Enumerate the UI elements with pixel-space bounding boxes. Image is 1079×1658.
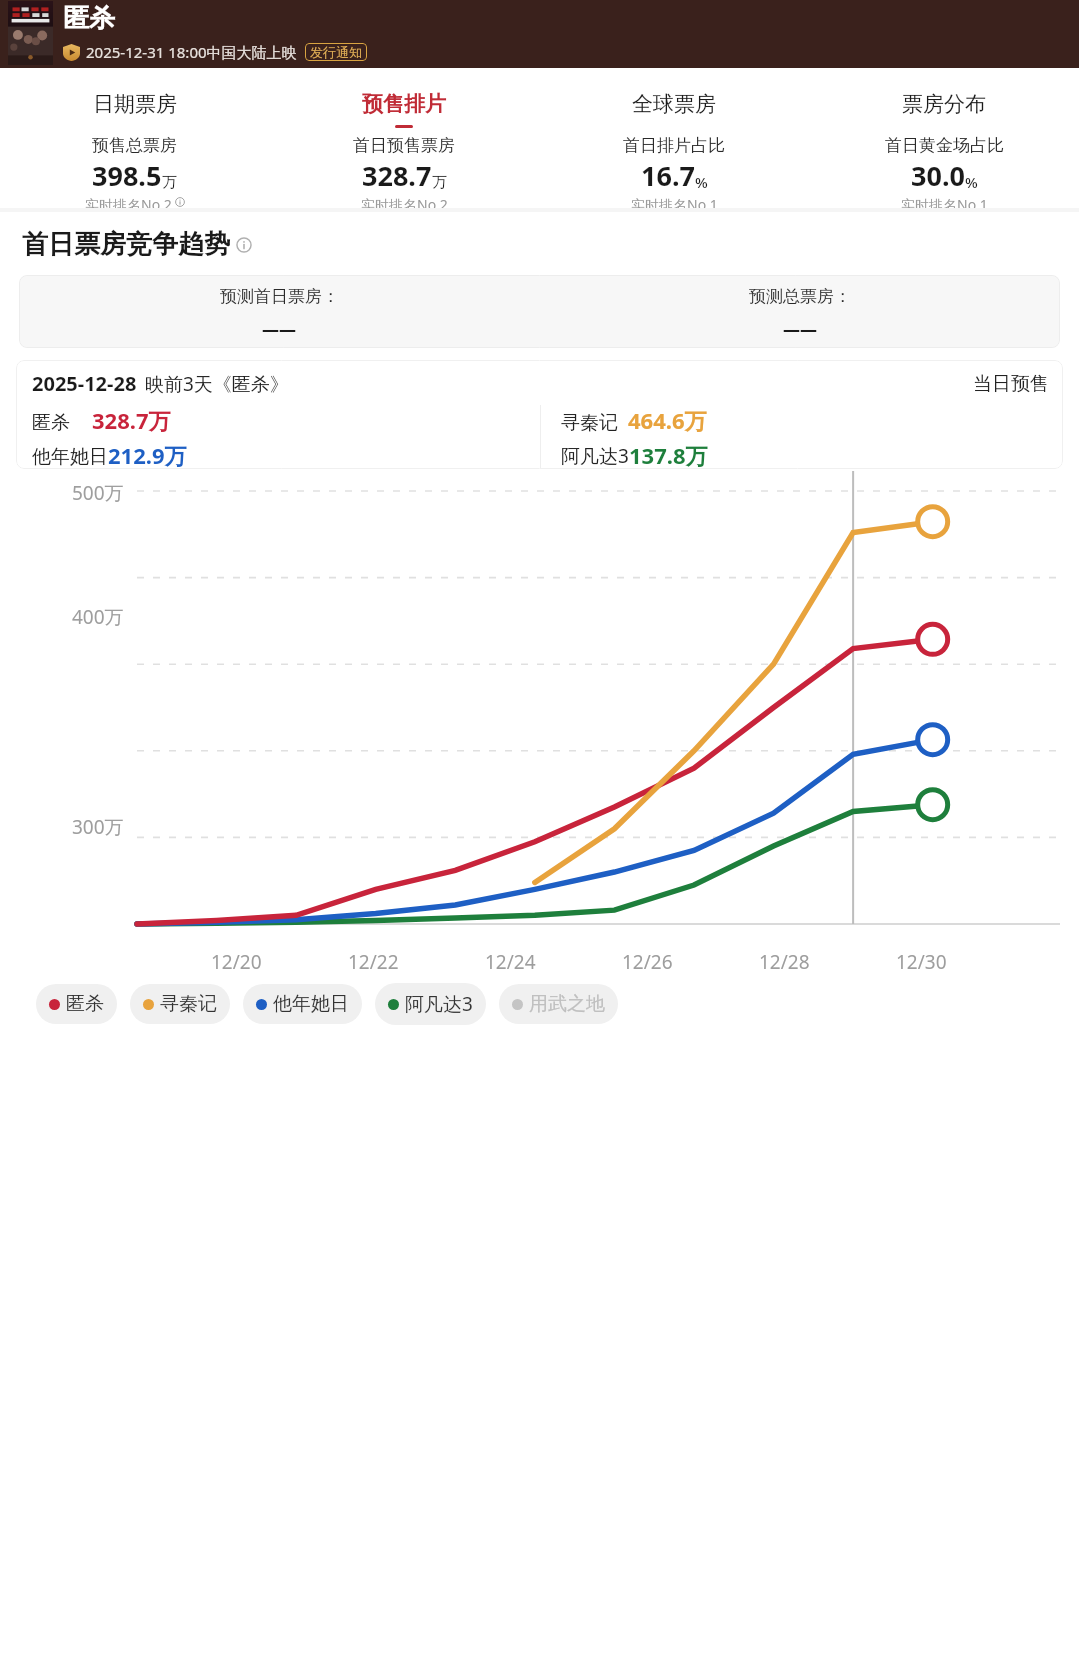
staticText: 首日黄金场占比 — [885, 135, 1004, 156]
staticText: 328.7 — [362, 157, 432, 194]
button[interactable]: 匿杀 — [36, 984, 117, 1024]
button[interactable]: 预测首日票房： — [19, 275, 1060, 348]
staticText: 12/24 — [485, 949, 536, 975]
staticText: 30.0 — [911, 157, 965, 194]
staticText: 500万 — [72, 480, 124, 506]
button[interactable]: 发行通知 — [310, 44, 362, 60]
staticText: 阿凡达3 — [405, 991, 473, 1017]
staticText: 398.5 — [92, 157, 162, 194]
staticText: 万 — [162, 173, 177, 192]
button[interactable]: 寻秦记 — [130, 984, 230, 1024]
staticText: 阿凡达3 — [561, 443, 629, 469]
button[interactable]: 他年她日 — [243, 984, 362, 1024]
staticText: —— — [783, 318, 817, 341]
staticText: % — [965, 172, 978, 192]
staticText: 匿杀 — [32, 411, 70, 435]
staticText: % — [695, 172, 708, 192]
button[interactable]: 票房分布 — [809, 72, 1079, 135]
button[interactable]: 全球票房 — [539, 72, 809, 135]
staticText: 匿杀 — [66, 992, 104, 1016]
button[interactable]: 预售排片 — [269, 72, 539, 135]
button[interactable]: 用武之地 — [499, 984, 618, 1024]
staticText: 日期票房 — [93, 91, 177, 117]
staticText: 实时排名No.2 — [85, 195, 172, 208]
staticText: 12/22 — [348, 949, 399, 975]
staticText: 全球票房 — [632, 91, 716, 117]
staticText: 预测首日票房： — [220, 286, 339, 307]
button[interactable]: 日期票房 — [0, 72, 269, 135]
staticText: 映前3天《匿杀》 — [145, 371, 289, 397]
staticText: 2025-12-28 — [32, 370, 137, 397]
staticText: 16.7 — [641, 157, 695, 194]
staticText: 首日票房竞争趋势 — [22, 228, 230, 261]
staticText: 用武之地 — [529, 992, 605, 1016]
staticText: 2025-12-31 18:00中国大陆上映 — [86, 42, 297, 62]
staticText: 寻秦记 — [561, 411, 618, 435]
staticText: 464.6万 — [628, 405, 707, 435]
staticText: 预测总票房： — [749, 286, 851, 307]
staticText: 400万 — [72, 604, 124, 630]
button[interactable]: 阿凡达3 — [375, 983, 486, 1025]
staticText: 票房分布 — [902, 91, 986, 117]
staticText: 匿杀 — [63, 2, 115, 35]
staticText: 预售总票房 — [92, 135, 177, 156]
staticText: 实时排名No.2 — [361, 195, 448, 208]
staticText: 212.9万 — [108, 440, 187, 469]
staticText: 当日预售 — [973, 372, 1049, 396]
staticText: 实时排名No.1 — [901, 195, 988, 208]
staticText: 12/20 — [211, 949, 262, 975]
button[interactable]: 首日黄金场占比 — [809, 135, 1079, 208]
staticText: 他年她日 — [32, 445, 108, 469]
staticText: 首日排片占比 — [623, 135, 725, 156]
staticText: 发行通知 — [310, 44, 362, 60]
staticText: 12/30 — [896, 949, 947, 975]
button[interactable]: 2025-12-28 — [16, 360, 1063, 469]
staticText: 300万 — [72, 814, 124, 840]
button[interactable]: 首日排片占比 — [539, 135, 809, 208]
button[interactable]: 首日预售票房 — [269, 135, 539, 208]
staticText: 他年她日 — [273, 992, 349, 1016]
staticText: 万 — [432, 173, 447, 192]
staticText: 预售排片 — [362, 91, 446, 117]
staticText: 137.8万 — [629, 440, 708, 469]
staticText: 寻秦记 — [160, 992, 217, 1016]
staticText: 首日预售票房 — [353, 135, 455, 156]
staticText: 328.7万 — [92, 405, 171, 435]
button[interactable]: 预售总票房 — [0, 135, 269, 208]
staticText: 12/28 — [759, 949, 810, 975]
staticText: 实时排名No.1 — [631, 195, 718, 208]
staticText: 12/26 — [622, 949, 673, 975]
staticText: —— — [262, 318, 296, 341]
other: Release info — [63, 44, 80, 61]
